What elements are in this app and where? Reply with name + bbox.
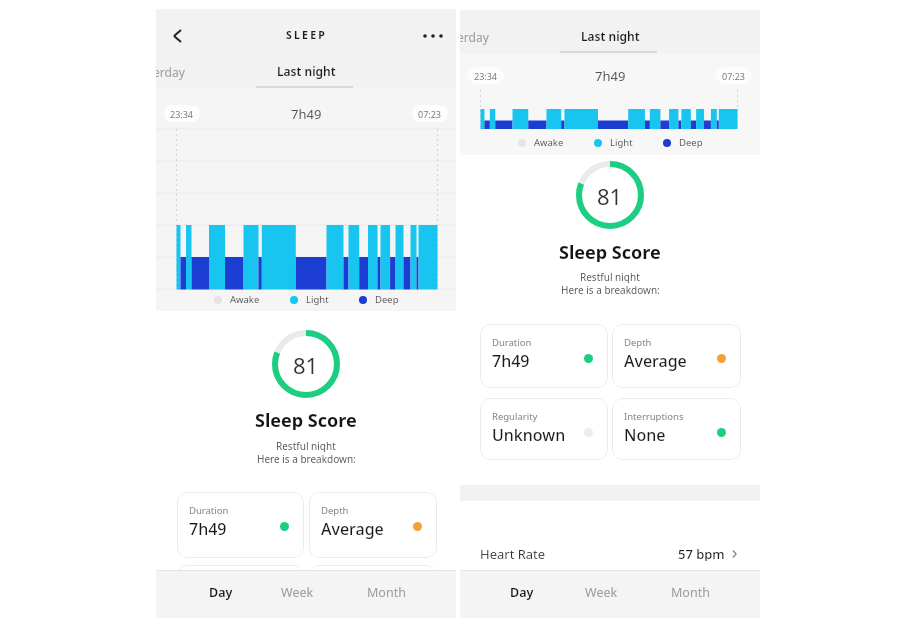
staticText: 23:34 (170, 108, 194, 120)
button[interactable]: Yesterday (156, 59, 190, 83)
staticText: Light (306, 293, 329, 306)
staticText: Here is a breakdown: (257, 452, 356, 465)
staticText: None (624, 424, 666, 446)
button[interactable]: Week (571, 570, 631, 614)
staticText: Interruptions (624, 410, 684, 423)
button[interactable]: Month (354, 570, 418, 614)
staticText: Average (321, 518, 384, 540)
staticText: Awake (534, 136, 564, 149)
staticText: Yesterday (156, 64, 185, 80)
staticText: Sleep Score (559, 240, 661, 262)
staticText: Depth (321, 504, 349, 517)
staticText: Heart Rate (480, 545, 546, 563)
button[interactable]: Day (492, 570, 552, 614)
staticText: Duration (189, 504, 229, 517)
staticText: Sleep Score (255, 408, 357, 430)
staticText: Awake (230, 293, 260, 306)
button[interactable] (177, 565, 304, 605)
staticText: Restful night (276, 439, 336, 452)
staticText: 81 (597, 181, 623, 209)
button[interactable]: Month (658, 570, 722, 614)
staticText: Average (624, 350, 687, 372)
button[interactable]: Heart Rate (460, 538, 760, 568)
staticText: 07:23 (722, 70, 746, 82)
staticText: 07:23 (418, 108, 442, 120)
staticText: Regularity (492, 410, 538, 423)
button[interactable] (418, 23, 448, 49)
button[interactable]: Duration (177, 492, 304, 558)
staticText: Month (671, 584, 710, 601)
staticText: Depth (624, 336, 652, 349)
staticText: 81 (293, 350, 319, 378)
button[interactable]: Depth (309, 492, 437, 558)
staticText: Last night (581, 28, 640, 44)
staticText: Here is a breakdown: (561, 283, 660, 296)
button[interactable]: Yesterday (460, 24, 494, 48)
button[interactable]: Day (191, 570, 251, 614)
staticText: Month (367, 584, 406, 601)
staticText: 23:34 (474, 70, 498, 82)
staticText: Yesterday (460, 29, 489, 45)
staticText: Week (281, 584, 314, 601)
staticText: Unknown (492, 424, 566, 446)
staticText: SLEEP (286, 28, 327, 42)
staticText: 7h49 (291, 105, 322, 123)
button[interactable] (309, 565, 437, 605)
staticText: 7h49 (492, 350, 530, 372)
staticText: Duration (492, 336, 532, 349)
staticText: 7h49 (595, 67, 626, 85)
button[interactable]: Regularity (480, 398, 608, 460)
button[interactable]: Interruptions (612, 398, 741, 460)
staticText: Restful night (580, 270, 640, 283)
staticText: Day (510, 584, 534, 601)
staticText: 57 bpm (678, 545, 725, 561)
button[interactable]: Week (267, 570, 327, 614)
button[interactable]: Depth (612, 324, 741, 388)
staticText: Day (209, 584, 233, 601)
button[interactable]: Last night (550, 27, 670, 45)
staticText: Last night (277, 63, 336, 79)
staticText: Week (585, 584, 618, 601)
button[interactable]: Last night (246, 62, 366, 80)
button[interactable] (164, 23, 190, 49)
staticText: 7h49 (189, 518, 227, 540)
staticText: Light (610, 136, 633, 149)
staticText: Deep (679, 136, 703, 149)
button[interactable]: Duration (480, 324, 608, 388)
staticText: Deep (375, 293, 399, 306)
